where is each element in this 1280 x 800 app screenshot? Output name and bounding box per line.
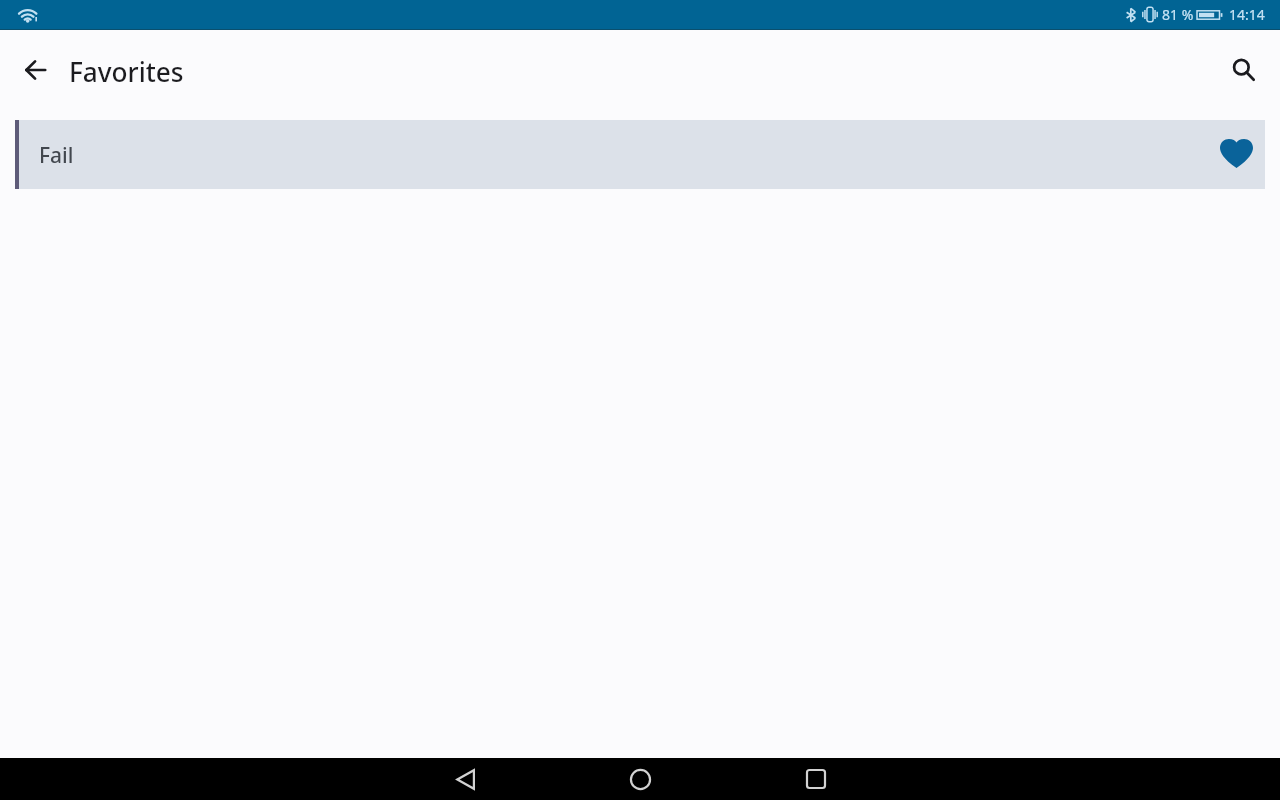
staticText: 14:14 <box>1229 5 1265 24</box>
staticText: Fail <box>39 141 74 170</box>
button[interactable]: Home <box>577 758 704 800</box>
button[interactable]: Back <box>402 758 529 800</box>
button[interactable]: Back <box>11 46 59 94</box>
staticText: 81 % <box>1162 5 1194 24</box>
button[interactable]: Favorite <box>1212 131 1260 179</box>
button[interactable]: Fail <box>15 120 1265 189</box>
button[interactable]: Search <box>1220 46 1268 94</box>
staticText: Favorites <box>69 54 184 90</box>
button[interactable]: Recents <box>752 758 879 800</box>
